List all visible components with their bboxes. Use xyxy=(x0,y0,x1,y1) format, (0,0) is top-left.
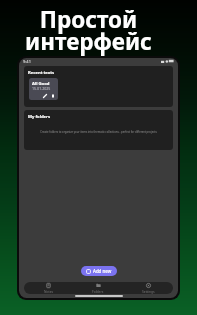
button[interactable]: Add new xyxy=(81,266,117,276)
staticText: Notes xyxy=(44,289,54,293)
staticText: 15.01.2025 xyxy=(32,86,51,91)
button[interactable]: Edit note xyxy=(42,93,47,98)
button[interactable]: All Good xyxy=(29,78,58,100)
button[interactable]: Delete note xyxy=(50,93,55,98)
button[interactable]: Settings xyxy=(123,282,173,294)
staticText: Recent texts xyxy=(28,70,55,76)
staticText: All Good xyxy=(32,81,50,87)
staticText: Create folders to organize your items in… xyxy=(40,130,157,134)
staticText: My folders xyxy=(28,114,51,120)
staticText: Folders xyxy=(92,289,104,293)
staticText: Settings xyxy=(142,289,155,293)
staticText: 9:41 xyxy=(23,59,31,64)
button[interactable]: Notes xyxy=(24,282,73,294)
button[interactable]: Folders xyxy=(73,282,123,294)
staticText: Add new xyxy=(93,268,112,274)
staticText: Простой интерфейс xyxy=(0,4,187,57)
